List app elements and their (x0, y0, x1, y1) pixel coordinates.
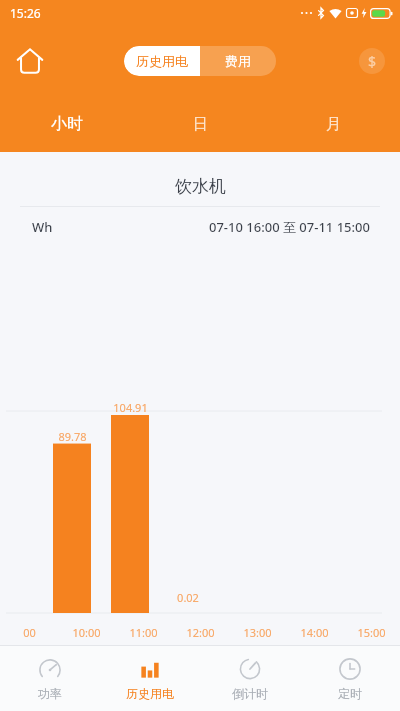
staticText: 费用 (225, 53, 251, 69)
staticText: 定时 (338, 686, 362, 701)
button[interactable]: Cost (352, 41, 392, 81)
button[interactable]: 月 (267, 96, 400, 152)
staticText: 10:00 (72, 625, 101, 640)
staticText: $ (368, 52, 377, 71)
staticText: 小时 (51, 114, 83, 134)
button[interactable]: 小时 (0, 96, 134, 152)
staticText: 11:00 (129, 625, 158, 640)
staticText: 日 (193, 115, 208, 134)
button[interactable]: 日 (134, 96, 267, 152)
button[interactable]: 功率 (0, 646, 100, 711)
staticText: 13:00 (243, 625, 272, 640)
button[interactable]: 历史用电 (100, 646, 200, 711)
staticText: 功率 (38, 686, 62, 701)
staticText: 15:00 (357, 625, 386, 640)
button[interactable]: Home (8, 39, 52, 83)
staticText: 15:26 (10, 5, 41, 21)
staticText: 月 (326, 115, 341, 134)
staticText: 12:00 (186, 625, 215, 640)
button[interactable]: 倒计时 (200, 646, 300, 711)
staticText: 历史用电 (126, 686, 174, 701)
button[interactable]: 费用 (200, 46, 276, 76)
staticText: 0.02 (177, 590, 199, 605)
staticText: 89.78 (58, 429, 87, 444)
button[interactable]: 历史用电 (124, 46, 200, 76)
staticText: 14:00 (300, 625, 329, 640)
staticText: 104.91 (113, 400, 148, 415)
button[interactable]: 定时 (300, 646, 400, 711)
staticText: 07-10 16:00 至 07-11 15:00 (209, 218, 370, 236)
staticText: 历史用电 (136, 53, 188, 69)
staticText: Wh (32, 218, 53, 236)
staticText: 饮水机 (175, 176, 226, 197)
staticText: 倒计时 (232, 686, 268, 701)
staticText: 00 (23, 625, 36, 640)
